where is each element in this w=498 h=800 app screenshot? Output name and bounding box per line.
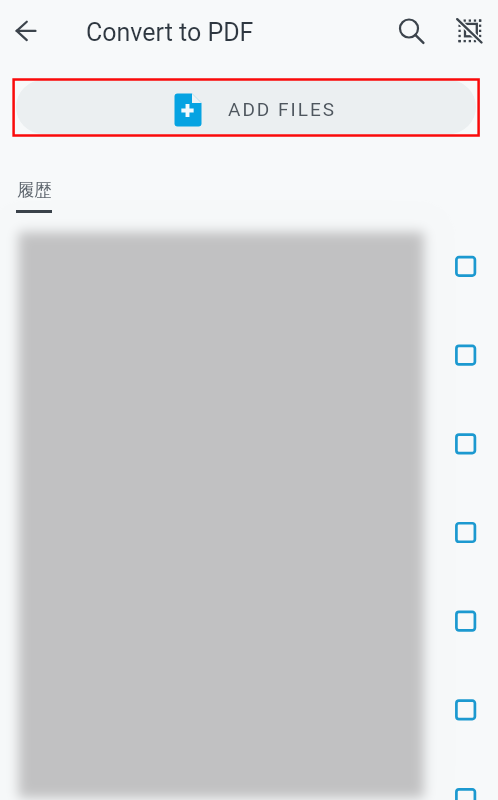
- button[interactable]: Select item: [444, 688, 486, 730]
- button[interactable]: 履歴: [0, 160, 70, 216]
- staticText: 履歴: [17, 179, 52, 201]
- button[interactable]: Select item: [444, 511, 486, 553]
- button[interactable]: Select item: [444, 333, 486, 375]
- staticText: Convert to PDF: [86, 18, 254, 47]
- button[interactable]: Select item: [444, 777, 486, 800]
- button[interactable]: Select item: [444, 245, 486, 287]
- button[interactable]: Back: [6, 11, 46, 51]
- button[interactable]: Select item: [444, 422, 486, 464]
- button[interactable]: Deselect all: [448, 9, 492, 53]
- button[interactable]: Search: [389, 8, 433, 52]
- button[interactable]: Select item: [444, 599, 486, 641]
- staticText: ADD FILES: [228, 98, 337, 120]
- button[interactable]: ADD FILES: [16, 80, 476, 134]
